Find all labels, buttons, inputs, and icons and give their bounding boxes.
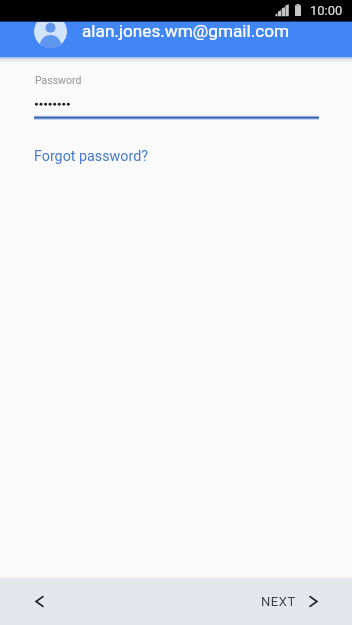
staticText: Password	[35, 74, 82, 86]
staticText: Forgot password?	[34, 148, 149, 165]
button[interactable]: Forgot password?	[34, 148, 149, 165]
staticText: alan.jones.wm@gmail.com	[82, 21, 290, 41]
button[interactable]: Password	[34, 70, 319, 121]
staticText: 10:00	[310, 3, 343, 18]
button[interactable]: Back	[16, 577, 62, 625]
button[interactable]: NEXT	[247, 577, 332, 625]
staticText: NEXT	[261, 594, 296, 609]
